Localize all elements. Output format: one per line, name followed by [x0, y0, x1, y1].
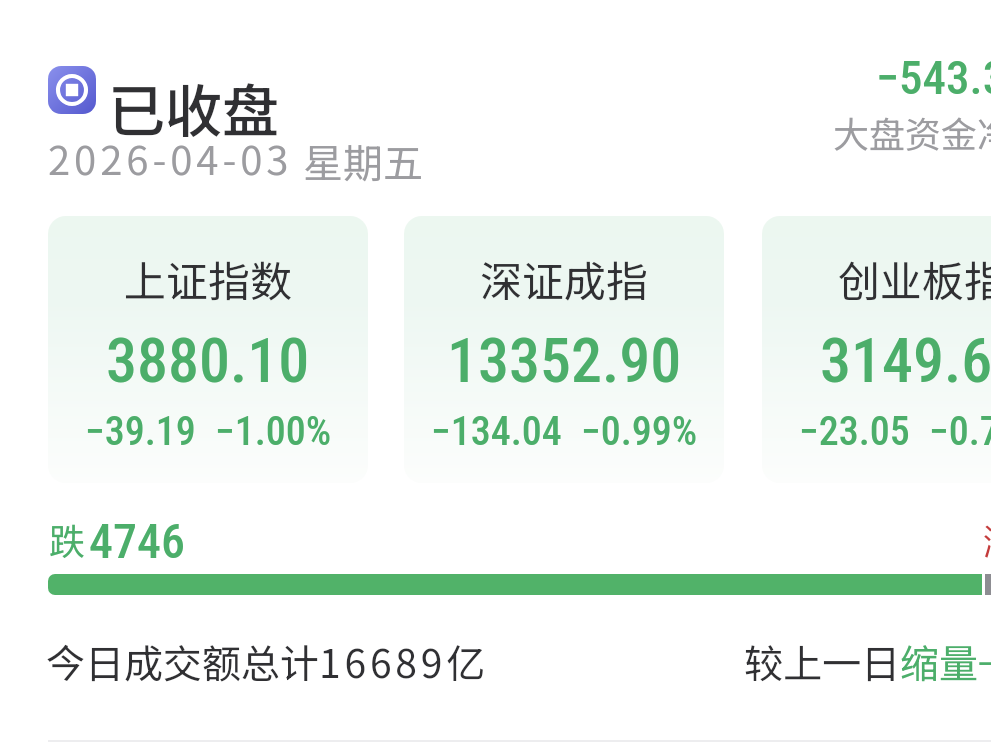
staticText: −1.00% — [215, 408, 332, 455]
staticText: 大盘资金净流入 — [833, 106, 991, 158]
staticText: 上证指数 — [124, 248, 293, 309]
staticText: −39.19 — [85, 408, 196, 455]
button[interactable]: 深证成指 — [404, 216, 724, 483]
button[interactable]: Advancing stocks — [982, 500, 991, 566]
button[interactable]: Market closed status — [48, 66, 279, 149]
staticText: 星期五 — [303, 132, 423, 190]
staticText: −543.30亿 — [876, 49, 991, 108]
staticText: 较上一日缩量−1253亿 — [744, 633, 991, 689]
staticText: 已收盘 — [108, 66, 279, 149]
staticText: 创业板指 — [838, 248, 991, 309]
staticText: 2026-04-03 — [48, 129, 293, 187]
staticText: 深证成指 — [480, 248, 649, 309]
button[interactable]: 上证指数 — [48, 216, 368, 483]
staticText: 3149.62 — [820, 324, 991, 397]
staticText: −134.04 — [431, 408, 562, 455]
button[interactable]: Declining stocks 4746 — [48, 500, 268, 566]
button[interactable]: 创业板指 — [762, 216, 991, 483]
staticText: 4746 — [89, 513, 185, 569]
staticText: −0.73% — [929, 408, 991, 455]
staticText: 涨 — [983, 513, 991, 565]
staticText: 今日成交额总计16689亿 — [46, 633, 486, 689]
staticText: −23.05 — [799, 408, 910, 455]
staticText: 13352.90 — [447, 324, 682, 397]
staticText: −0.99% — [581, 408, 698, 455]
staticText: 3880.10 — [106, 324, 310, 397]
staticText: 跌 — [49, 513, 86, 565]
